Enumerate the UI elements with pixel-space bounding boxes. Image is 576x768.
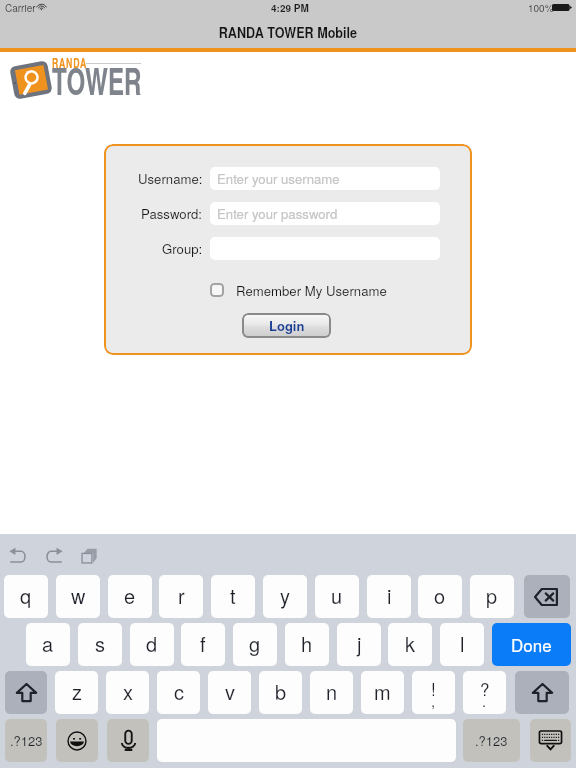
staticText: t [230,581,236,610]
staticText: f [200,629,206,658]
staticText: .?123 [10,731,43,750]
button[interactable]: v [208,671,251,714]
staticText: ? [480,676,490,700]
button[interactable]: c [157,671,200,714]
staticText: s [95,629,105,658]
staticText: Done [511,632,552,656]
staticText: n [326,677,338,706]
button[interactable]: s [78,623,122,666]
button[interactable]: Enter your username [210,167,440,190]
staticText: h [301,629,313,658]
button[interactable]: h [285,623,329,666]
staticText: TOWER [52,54,142,106]
button[interactable]: Remember My Username [210,280,387,300]
button[interactable]: Dictation [107,719,149,762]
button[interactable]: w [56,575,100,618]
button[interactable]: g [233,623,277,666]
staticText: q [20,581,32,610]
staticText: c [174,677,184,706]
button[interactable]: m [361,671,404,714]
staticText: i [387,581,392,610]
staticText: Group: [162,239,203,258]
staticText: Enter your username [217,169,340,188]
button[interactable]: p [470,575,514,618]
button[interactable]: i [367,575,411,618]
staticText: v [225,677,235,706]
button[interactable]: .?123 [5,719,47,762]
staticText: m [374,677,391,706]
button[interactable]: e [108,575,152,618]
button[interactable]: z [55,671,98,714]
button[interactable]: Done [492,623,571,666]
staticText: ! [431,676,436,700]
staticText: b [275,677,287,706]
button[interactable]: y [263,575,307,618]
button[interactable]: Backspace [524,575,570,618]
button[interactable]: f [181,623,225,666]
staticText: j [357,629,362,658]
button[interactable]: u [315,575,359,618]
button[interactable]: n [310,671,353,714]
staticText: Login [269,316,305,335]
button[interactable]: t [211,575,255,618]
staticText: z [72,677,82,706]
staticText: Remember My Username [236,281,387,300]
staticText: w [71,581,86,610]
staticText: l [460,629,465,658]
button[interactable]: b [259,671,302,714]
staticText: Password: [141,204,203,223]
staticText: Enter your password [217,204,338,223]
staticText: a [42,629,54,658]
staticText: x [123,677,133,706]
staticText: RANDA [52,54,87,72]
staticText: .?123 [475,731,508,750]
button[interactable]: Paste [75,542,102,569]
button[interactable]: Undo [4,543,33,568]
button[interactable]: Emoji [56,719,98,762]
staticText: r [178,581,185,610]
staticText: u [331,581,343,610]
staticText: e [124,581,136,610]
button[interactable]: r [159,575,203,618]
staticText: 100% [528,1,554,15]
button[interactable]: .?123 [463,719,520,762]
button[interactable]: ! [412,671,455,714]
staticText: y [280,581,290,610]
staticText: d [146,629,158,658]
staticText: . [482,690,487,711]
button[interactable]: k [388,623,432,666]
staticText: g [249,629,261,658]
button[interactable]: Shift [5,671,47,714]
button[interactable]: Shift [515,671,569,714]
button[interactable]: Redo [39,543,68,568]
staticText: RANDA TOWER Mobile [219,22,357,42]
button[interactable]: Enter your password [210,202,440,225]
button[interactable]: l [440,623,484,666]
button[interactable]: Login [242,313,331,338]
staticText: 4:29 PM [271,1,309,15]
staticText: Username: [138,169,203,188]
button[interactable]: o [418,575,462,618]
staticText: p [486,581,498,610]
button[interactable]: q [4,575,48,618]
button[interactable]: Hide keyboard [530,719,571,762]
button[interactable]: j [337,623,381,666]
staticText: , [431,690,436,711]
staticText: o [434,581,446,610]
staticText: k [405,629,415,658]
button[interactable]: a [26,623,70,666]
button[interactable]: x [106,671,149,714]
button[interactable]: d [130,623,174,666]
staticText: Carrier [5,1,36,15]
button[interactable]: ? [463,671,506,714]
